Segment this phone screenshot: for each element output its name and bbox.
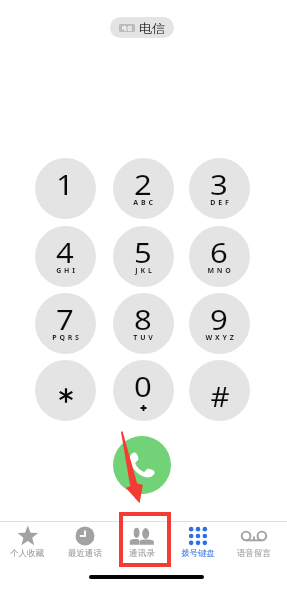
button[interactable]: 8 [113,293,174,354]
button[interactable]: 电信 [110,17,174,38]
staticText: 最近通话 [68,548,102,559]
staticText: MNO [207,266,234,276]
button[interactable]: 1 [35,158,96,219]
staticText: 通讯录 [129,548,155,559]
button[interactable] [35,360,96,421]
staticText: 电信 [122,25,132,31]
button[interactable]: 语音留言 [226,525,282,559]
button[interactable]: 7 [35,293,96,354]
button[interactable]: # [189,360,250,421]
staticText: 2 [134,166,152,203]
button[interactable]: 9 [189,293,250,354]
button[interactable]: 拨号键盘 [170,525,226,559]
button[interactable]: 2 [113,158,174,219]
button[interactable]: Call [113,436,171,494]
staticText: PQRS [52,333,82,343]
staticText: 电信 [139,20,165,36]
staticText: 3 [210,166,228,203]
button[interactable]: 3 [189,158,250,219]
button[interactable]: 最近通话 [57,525,113,559]
staticText: ABC [133,198,156,208]
staticText: TUV [133,333,156,343]
staticText: WXYZ [205,333,237,343]
staticText: 0 [134,368,152,405]
staticText: 个人收藏 [10,548,44,559]
staticText: 语音留言 [237,548,271,559]
staticText: 5 [134,234,152,271]
staticText: JKL [135,266,155,276]
button[interactable]: 4 [35,226,96,287]
staticText: 拨号键盘 [181,548,215,559]
staticText: DEF [210,198,232,208]
staticText: # [210,378,230,415]
staticText: 8 [134,301,152,338]
button[interactable]: 0 [113,360,174,421]
staticText: GHI [56,266,78,276]
button[interactable]: 个人收藏 [0,525,55,559]
staticText: 4 [56,234,74,271]
staticText: 7 [56,301,74,338]
button[interactable]: 6 [189,226,250,287]
button[interactable]: 5 [113,226,174,287]
staticText: 9 [210,301,228,338]
staticText: 6 [210,234,228,271]
staticText: 1 [56,166,74,203]
button[interactable]: 通讯录 [114,525,170,559]
